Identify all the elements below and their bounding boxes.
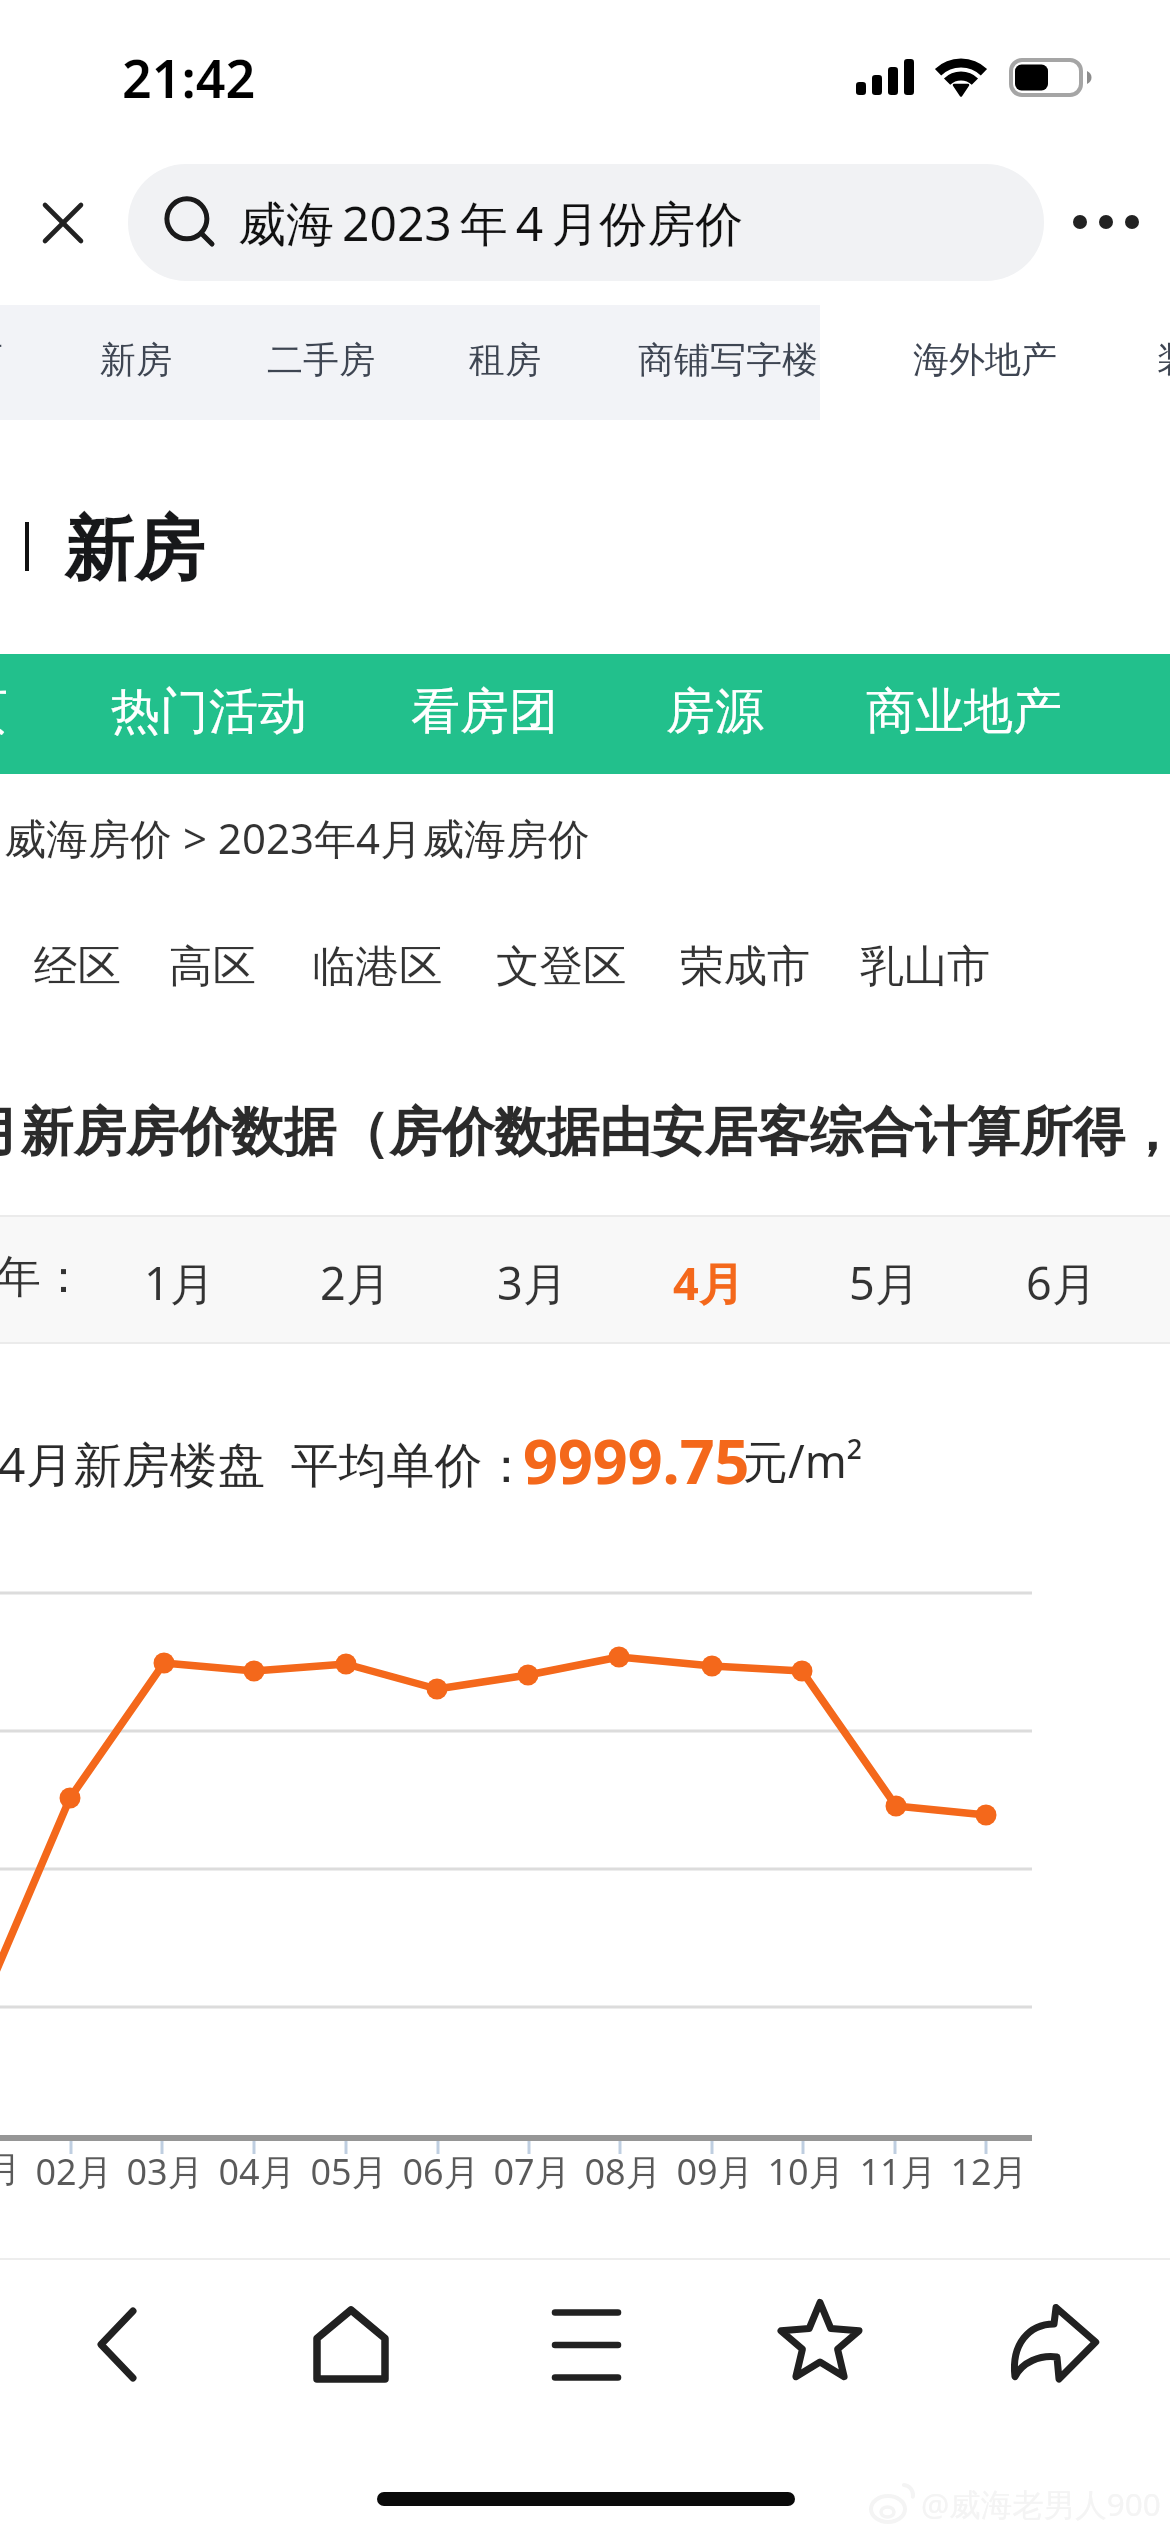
button[interactable]: 4月: [673, 1252, 744, 1313]
staticText: 临港区: [312, 939, 443, 994]
button[interactable]: 看房团: [411, 681, 558, 743]
staticText: 10月: [767, 2147, 839, 2196]
staticText: 商铺写字楼: [638, 337, 818, 382]
staticText: 08月: [584, 2147, 656, 2196]
staticText: @威海老男人900: [921, 2482, 1161, 2525]
button[interactable]: Menu: [523, 2282, 649, 2408]
staticText: 3月: [497, 1252, 568, 1313]
button[interactable]: 装: [1157, 337, 1170, 382]
staticText: 新房: [64, 506, 204, 594]
staticText: 06月: [402, 2147, 474, 2196]
staticText: 威海房价 > 2023年4月威海房价: [4, 809, 590, 866]
staticText: 11月: [859, 2147, 931, 2196]
button[interactable]: 租房: [469, 337, 541, 382]
button[interactable]: 乳山市: [860, 939, 991, 994]
button[interactable]: 威海 2023 年 4 月份房价: [128, 164, 1044, 281]
button[interactable]: 2月: [320, 1252, 391, 1313]
button[interactable]: 页: [0, 681, 8, 743]
staticText: 月新房房价数据（房价数据由安居客综合计算所得，: [0, 1099, 1170, 1165]
staticText: 4月: [673, 1252, 744, 1313]
button[interactable]: 临港区: [312, 939, 443, 994]
staticText: 乳山市: [860, 939, 991, 994]
staticText: 9999.75: [523, 1419, 750, 1502]
staticText: 荣成市: [680, 939, 811, 994]
staticText: 看房团: [411, 681, 558, 743]
staticText: 年：: [0, 1249, 86, 1306]
staticText: 12月: [950, 2147, 1022, 2196]
staticText: 海外地产: [913, 337, 1057, 382]
button[interactable]: 1月: [144, 1252, 215, 1313]
staticText: 装: [1157, 337, 1170, 382]
staticText: 页: [0, 337, 3, 382]
staticText: 元/m²: [743, 1430, 863, 1491]
staticText: 热门活动: [111, 681, 307, 743]
button[interactable]: 页: [0, 337, 3, 382]
staticText: 新房: [100, 337, 172, 382]
staticText: 6月: [1026, 1252, 1097, 1313]
button[interactable]: 荣成市: [680, 939, 811, 994]
button[interactable]: 海外地产: [913, 337, 1057, 382]
staticText: 5月: [849, 1252, 920, 1313]
staticText: 2月: [320, 1252, 391, 1313]
button[interactable]: 热门活动: [111, 681, 307, 743]
staticText: 21:42: [122, 42, 256, 113]
staticText: 经区: [34, 939, 121, 994]
staticText: 1月: [144, 1252, 215, 1313]
staticText: 威海 2023 年 4 月份房价: [238, 190, 744, 256]
staticText: 租房: [469, 337, 541, 382]
button[interactable]: 二手房: [267, 337, 375, 382]
button[interactable]: 高区: [169, 939, 256, 994]
staticText: 文登区: [496, 939, 627, 994]
staticText: 05月: [310, 2147, 382, 2196]
button[interactable]: 新房: [100, 337, 172, 382]
button[interactable]: Favorite: [757, 2277, 883, 2403]
button[interactable]: More options: [1058, 190, 1154, 254]
button[interactable]: Share: [991, 2281, 1117, 2407]
button[interactable]: Back: [54, 2281, 180, 2407]
button[interactable]: 经区: [34, 939, 121, 994]
button[interactable]: 房源: [666, 681, 764, 743]
button[interactable]: Home: [288, 2281, 414, 2407]
button[interactable]: 文登区: [496, 939, 627, 994]
staticText: 02月: [35, 2147, 107, 2196]
staticText: 商业地产: [866, 681, 1062, 743]
staticText: 07月: [493, 2147, 565, 2196]
button[interactable]: 3月: [497, 1252, 568, 1313]
staticText: 房源: [666, 681, 764, 743]
button[interactable]: 商业地产: [866, 681, 1062, 743]
staticText: 月: [0, 2147, 21, 2192]
staticText: 页: [0, 681, 8, 743]
staticText: 03月: [126, 2147, 198, 2196]
staticText: 4月新房楼盘 平均单价：: [0, 1431, 531, 1497]
button[interactable]: 5月: [849, 1252, 920, 1313]
button[interactable]: 6月: [1026, 1252, 1097, 1313]
staticText: 二手房: [267, 337, 375, 382]
staticText: 09月: [676, 2147, 748, 2196]
button[interactable]: 商铺写字楼: [638, 337, 818, 382]
staticText: 04月: [218, 2147, 290, 2196]
button[interactable]: Close: [27, 187, 99, 259]
staticText: 高区: [169, 939, 256, 994]
